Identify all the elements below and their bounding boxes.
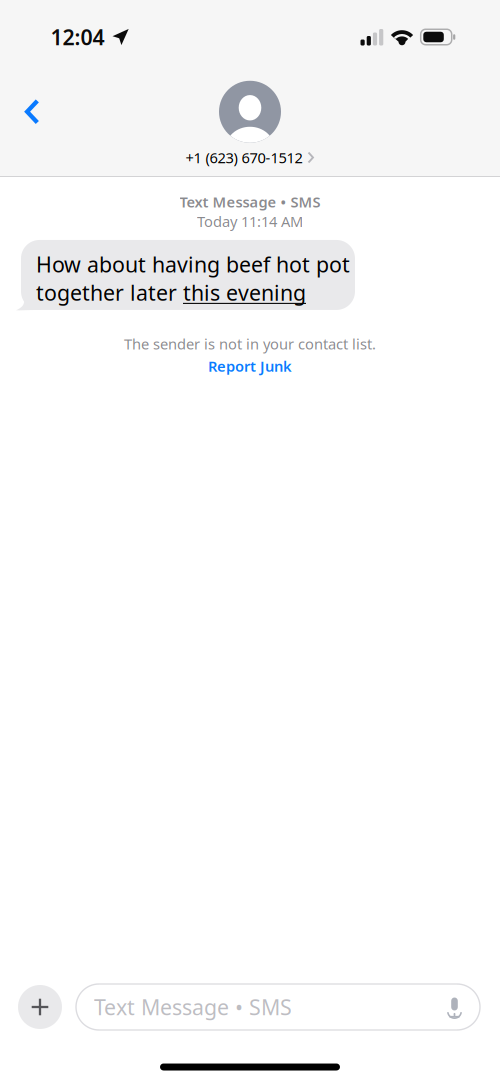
button[interactable]: Add attachment [18,985,62,1029]
staticText: Today 11:14 AM [197,211,303,231]
button[interactable]: Text Message • SMS [76,984,480,1030]
button[interactable]: Back [8,88,56,136]
staticText: Report Junk [208,356,292,376]
staticText: Text Message • SMS [94,993,292,1021]
staticText: together later this evening [36,278,306,307]
staticText: The sender is not in your contact list. [124,334,376,353]
staticText: Text Message • SMS [179,192,320,211]
staticText: 12:04 [50,23,104,51]
staticText: How about having beef hot pot [36,250,350,278]
staticText: +1 (623) 670-1512 [185,148,302,167]
button[interactable]: Report Junk [208,356,292,376]
button[interactable]: +1 (623) 670-1512 [185,81,314,167]
